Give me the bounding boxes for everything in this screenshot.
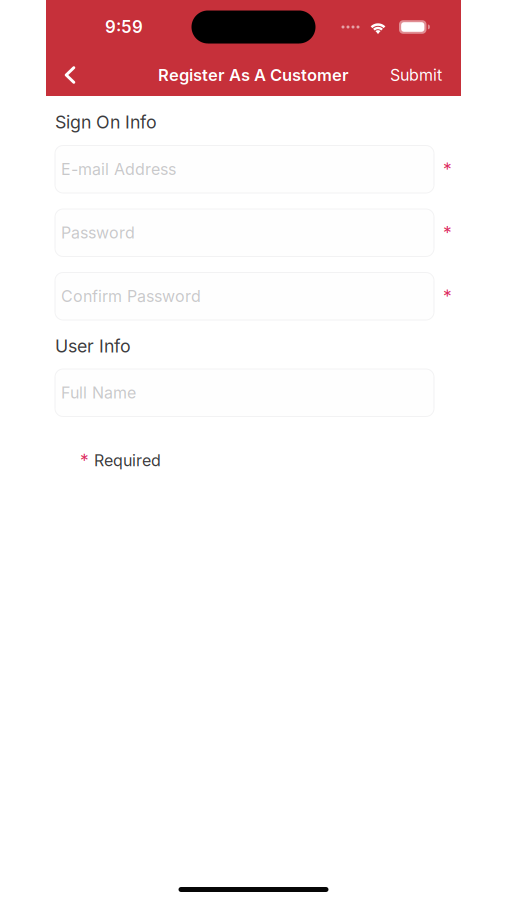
button[interactable]: Back xyxy=(46,54,87,96)
button[interactable]: Full Name xyxy=(55,369,434,416)
staticText: Confirm Password xyxy=(61,287,201,306)
staticText: Register As A Customer xyxy=(158,65,349,85)
staticText: * xyxy=(443,159,452,180)
button[interactable]: Confirm Password xyxy=(55,272,434,320)
staticText: Required xyxy=(94,451,161,470)
staticText: Full Name xyxy=(61,383,136,402)
staticText: User Info xyxy=(55,335,131,357)
button[interactable]: E-mail Address xyxy=(55,145,434,193)
staticText: * xyxy=(80,450,89,471)
staticText: * xyxy=(443,222,452,243)
button[interactable]: Submit xyxy=(374,54,461,96)
staticText: * xyxy=(443,286,452,307)
staticText: Submit xyxy=(390,65,442,85)
staticText: Password xyxy=(61,223,135,242)
staticText: 9:59 xyxy=(105,17,143,37)
staticText: E-mail Address xyxy=(61,160,176,179)
button[interactable]: Password xyxy=(55,209,434,256)
staticText: Sign On Info xyxy=(55,111,157,133)
